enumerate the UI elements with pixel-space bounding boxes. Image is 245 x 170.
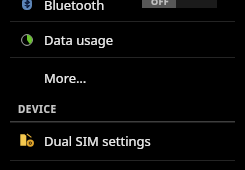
staticText: OFF xyxy=(151,0,170,7)
button[interactable]: More… xyxy=(0,58,245,92)
button[interactable]: Bluetooth xyxy=(0,0,245,21)
staticText: Bluetooth xyxy=(44,0,105,14)
button[interactable]: Bluetooth switch, off xyxy=(142,0,217,8)
staticText: Dual SIM settings xyxy=(44,132,151,150)
staticText: More… xyxy=(44,69,87,87)
button[interactable]: Dual SIM settings xyxy=(0,122,245,160)
staticText: Data usage xyxy=(44,31,114,49)
staticText: DEVICE xyxy=(18,102,57,116)
button[interactable]: Data usage xyxy=(0,22,245,57)
